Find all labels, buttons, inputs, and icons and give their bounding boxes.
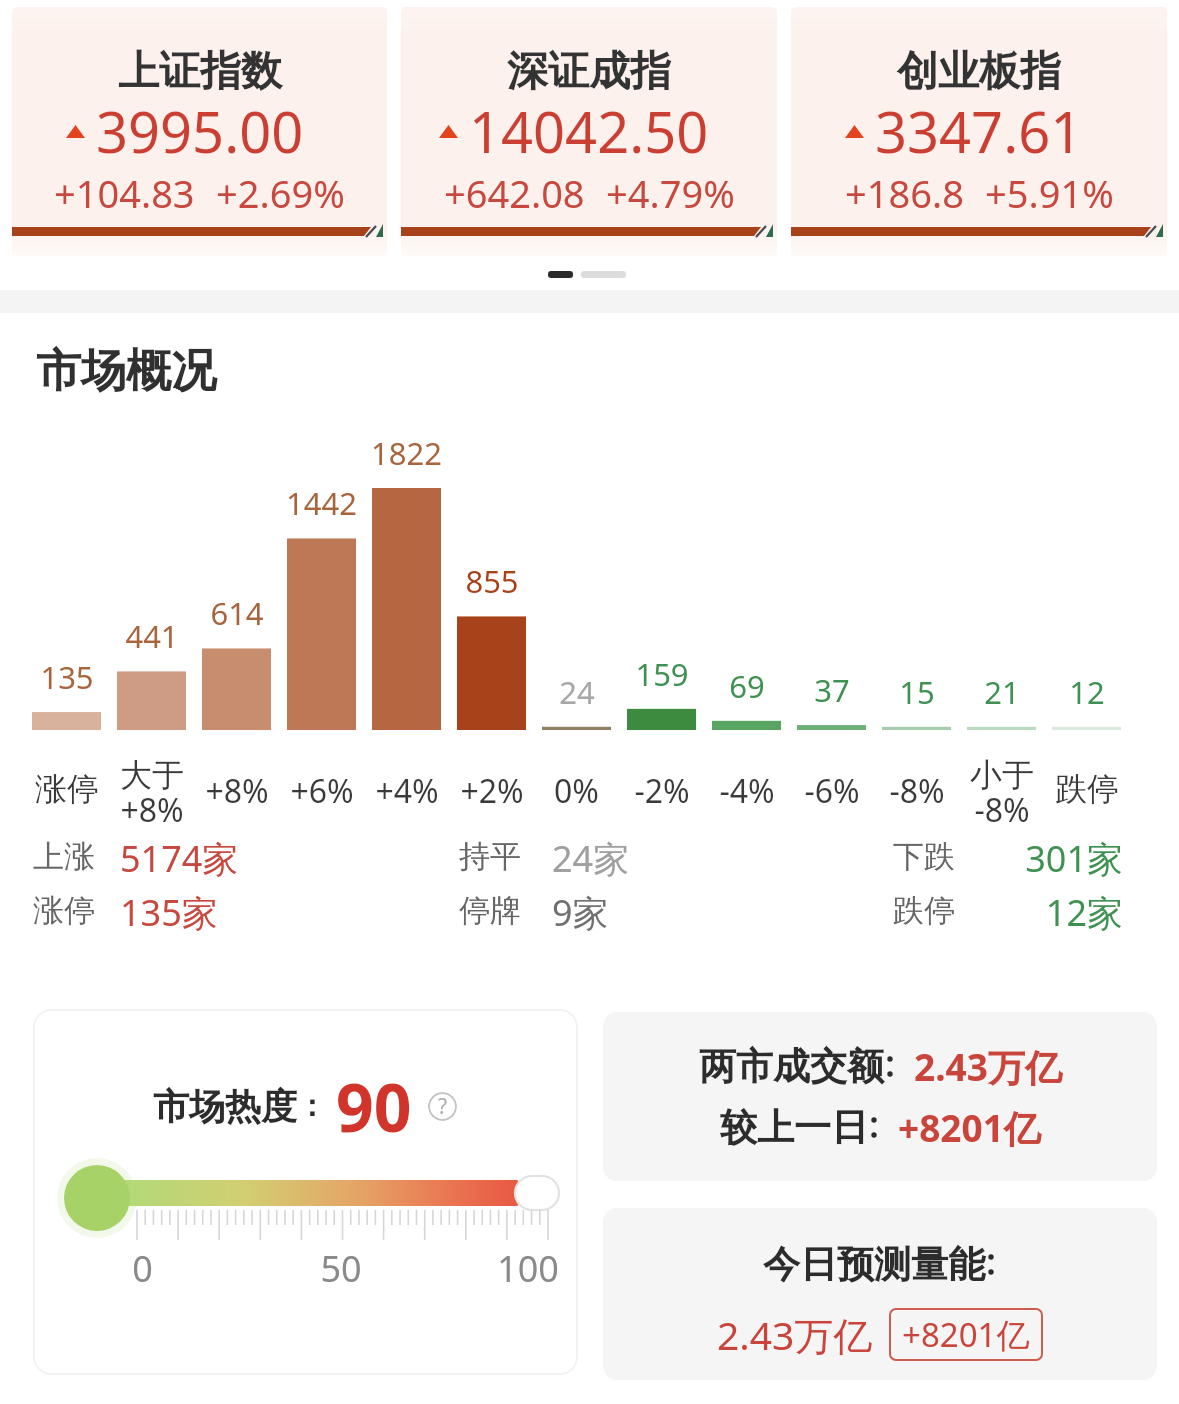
staticText: 深证成指 [507,46,671,98]
staticText: 0% [554,769,599,813]
staticText: 37 [814,669,850,711]
staticText: 24家 [552,834,630,883]
staticText: 135家 [120,888,218,937]
button[interactable]: 市场概况 [36,343,216,400]
staticText: 涨停 [33,891,95,930]
button[interactable]: 深证成指 [401,7,777,256]
button[interactable]: 今日预测量能 [603,1208,1157,1380]
staticText: 5174家 [120,834,239,883]
staticText: 159 [635,653,689,695]
staticText: 2.43万亿 [914,1041,1062,1092]
staticText: 创业板指 [897,46,1061,98]
staticText: 1822 [371,432,442,474]
button[interactable]: What is market heat [428,1092,457,1121]
button[interactable]: 上证指数 [12,7,387,256]
staticText: 市场概况 [36,343,216,400]
staticText: -4% [719,769,775,813]
staticText: 3995.00 [96,93,304,169]
staticText: 上涨 [33,837,95,876]
staticText: +642.08 [444,167,585,219]
staticText: +4% [375,769,439,813]
staticText: 两市成交额 [699,1043,884,1090]
staticText: 90 [336,1061,412,1151]
staticText: 跌停 [1055,769,1119,809]
staticText: 15 [899,671,935,713]
staticText: 大于 +8% [120,755,184,832]
staticText: -8% [889,769,945,813]
staticText: 市场热度 [153,1084,297,1129]
staticText: 下跌 [893,837,955,876]
staticText: ? [438,1092,448,1121]
button[interactable]: 市场热度 [33,1009,578,1375]
staticText: 135 [40,656,94,698]
button[interactable]: 两市成交额 [603,1012,1157,1181]
staticText: 14042.50 [469,93,709,169]
staticText: +2.69% [216,167,345,219]
staticText: +6% [290,769,354,813]
staticText: +186.8 [845,167,964,219]
staticText: 2.43万亿 [717,1308,873,1361]
staticText: -2% [634,769,690,813]
staticText: 441 [125,615,179,657]
staticText: +8% [205,769,269,813]
staticText: 跌停 [893,891,955,930]
staticText: ： [297,1087,327,1125]
staticText: +4.79% [606,167,735,219]
staticText: -6% [804,769,860,813]
staticText: 小于 -8% [970,755,1034,832]
staticText: 12 [1069,671,1105,713]
staticText: 1442 [286,482,357,524]
staticText: 614 [210,592,264,634]
staticText: 停牌 [459,891,521,930]
staticText: 9家 [552,888,609,937]
button[interactable]: 创业板指 [791,7,1167,256]
staticText: 3347.61 [875,93,1083,169]
staticText: 100 [497,1244,559,1293]
staticText: +5.91% [985,167,1114,219]
staticText: +104.83 [54,167,195,219]
staticText: 50 [320,1244,362,1293]
button[interactable]: Page 2 [581,271,626,278]
staticText: 69 [729,665,765,707]
staticText: 24 [559,671,595,713]
staticText: +8201亿 [902,1312,1030,1357]
staticText: +2% [460,769,524,813]
staticText: 持平 [459,837,521,876]
staticText: 21 [984,671,1020,713]
staticText: 上证指数 [118,46,282,98]
staticText: 较上一日 [720,1104,868,1151]
staticText: +8201亿 [898,1102,1041,1153]
button[interactable]: Page 1 [548,271,573,278]
staticText: 今日预测量能 [763,1241,985,1288]
staticText: 301家 [1025,834,1123,883]
staticText: 涨停 [35,769,99,809]
staticText: 855 [465,560,519,602]
staticText: 12家 [1045,888,1123,937]
staticText: 0 [132,1244,153,1293]
